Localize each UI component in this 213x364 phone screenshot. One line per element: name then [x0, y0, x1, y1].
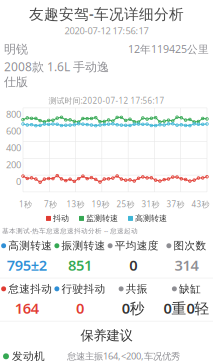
- staticText: 200: [6, 158, 21, 171]
- staticText: 缺缸: [179, 282, 201, 295]
- staticText: 43秒: [191, 199, 209, 209]
- staticText: 共振: [126, 282, 148, 295]
- staticText: 发动机: [12, 350, 45, 363]
- staticText: 31秒: [141, 199, 159, 209]
- staticText: 友趣安驾-车况详细分析: [29, 4, 184, 23]
- staticText: 1秒: [19, 199, 32, 209]
- staticText: 行驶抖动: [61, 282, 105, 295]
- staticText: 400: [6, 141, 21, 154]
- staticText: 851: [68, 255, 92, 275]
- staticText: 13秒: [66, 199, 84, 209]
- staticText: 2008款 1.6L 手动逸仕版: [4, 59, 109, 89]
- staticText: 12年119425公里: [128, 42, 209, 56]
- staticText: 2020-07-12 17:56:17: [64, 24, 148, 37]
- staticText: 7秒: [44, 199, 57, 209]
- staticText: 怠速抖动: [8, 282, 52, 295]
- staticText: 19秒: [91, 199, 109, 209]
- staticText: 保养建议: [80, 327, 132, 344]
- staticText: 37秒: [166, 199, 184, 209]
- staticText: 抖动: [53, 213, 69, 223]
- staticText: 平均速度: [115, 239, 159, 252]
- staticText: 振测转速: [61, 239, 105, 252]
- staticText: 0: [16, 175, 21, 187]
- staticText: 怠速主振164,<200,车况优秀: [67, 350, 180, 362]
- staticText: 高测转速: [8, 239, 52, 252]
- staticText: 314: [174, 255, 198, 275]
- staticText: 0秒: [122, 298, 145, 318]
- staticText: 25秒: [116, 199, 134, 209]
- staticText: 164: [15, 298, 39, 318]
- staticText: 测试时间:2020-07-12 17:56:17: [48, 95, 164, 106]
- staticText: 图次数: [173, 239, 206, 252]
- staticText: 0重0轻: [163, 298, 209, 318]
- staticText: 600: [6, 125, 21, 137]
- staticText: 0: [76, 298, 84, 318]
- staticText: 795±2: [7, 255, 47, 275]
- staticText: 高测转速: [135, 213, 167, 223]
- staticText: 明锐: [4, 42, 28, 57]
- staticText: 0: [129, 255, 137, 275]
- staticText: 800: [6, 108, 21, 120]
- staticText: 基本测试-热车怠速怠速抖动分析 -- 怠速起动: [2, 226, 138, 235]
- staticText: 监测转速: [86, 213, 118, 223]
